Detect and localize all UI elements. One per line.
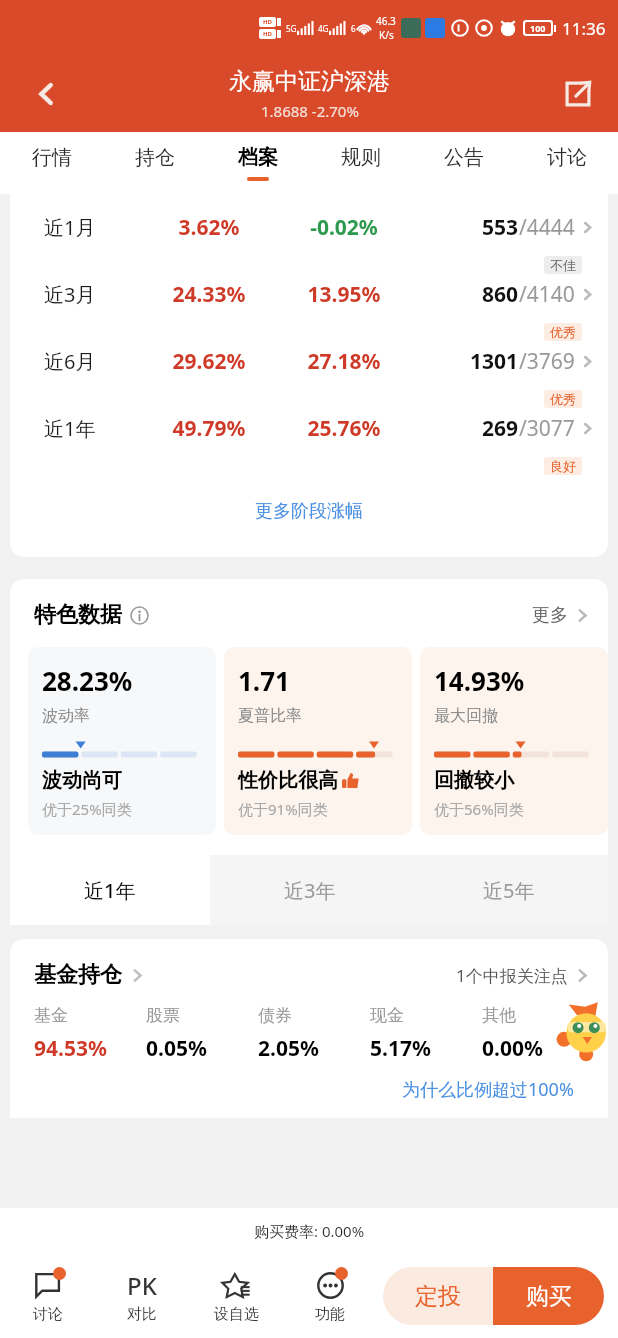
button[interactable]: 更多 <box>532 604 590 627</box>
staticText: 4G <box>318 23 329 34</box>
staticText: 夏普比率 <box>238 706 302 726</box>
button[interactable]: 近1月 <box>10 194 608 261</box>
staticText: 近3年 <box>284 877 336 904</box>
staticText: 功能 <box>315 1305 345 1324</box>
button[interactable]: 讨论 <box>515 132 618 194</box>
staticText: /4444 <box>519 213 575 242</box>
staticText: 对比 <box>127 1305 157 1324</box>
staticText: 设自选 <box>214 1305 259 1324</box>
staticText: 14.93% <box>434 663 525 698</box>
staticText: /4140 <box>519 280 575 309</box>
staticText: 其他 <box>482 1005 516 1026</box>
staticText: 回撤较小 <box>434 768 514 793</box>
staticText: PK <box>127 1269 157 1301</box>
staticText: HD <box>263 30 272 38</box>
button[interactable]: 1个中报关注点 <box>456 964 590 987</box>
button[interactable]: 近1年 <box>10 855 210 925</box>
staticText: 100 <box>530 22 546 34</box>
staticText: 0.00% <box>482 1034 543 1063</box>
staticText: 近3月 <box>44 281 144 308</box>
staticText: 讨论 <box>33 1305 63 1324</box>
staticText: 优于56%同类 <box>434 799 524 819</box>
staticText: 1个中报关注点 <box>456 964 568 987</box>
staticText: 波动尚可 <box>42 768 122 793</box>
staticText: 优于91%同类 <box>238 799 328 819</box>
staticText: 27.18% <box>274 347 414 376</box>
staticText: 269 <box>482 414 519 443</box>
staticText: -0.02% <box>274 213 414 242</box>
staticText: 1.8688 -2.70% <box>261 101 359 121</box>
staticText: 优秀 <box>550 391 576 407</box>
button[interactable]: 基金持仓 <box>34 961 145 989</box>
staticText: 49.79% <box>144 414 274 443</box>
staticText: 24.33% <box>144 280 274 309</box>
button[interactable]: 1.71 <box>224 647 412 835</box>
button[interactable]: 功能 <box>283 1254 377 1338</box>
staticText: 1.71 <box>238 663 290 698</box>
staticText: 5.17% <box>370 1034 431 1063</box>
button[interactable]: 14.93% <box>420 647 608 835</box>
staticText: 行情 <box>32 145 72 170</box>
staticText: 更多 <box>532 604 568 627</box>
staticText: 最大回撤 <box>434 706 498 726</box>
staticText: 近1年 <box>84 877 136 904</box>
staticText: HD <box>263 18 272 26</box>
button[interactable]: 购买 <box>493 1267 604 1325</box>
staticText: 档案 <box>238 145 278 170</box>
staticText: 股票 <box>146 1005 180 1026</box>
button[interactable]: 公告 <box>412 132 515 194</box>
staticText: 1301 <box>470 347 519 376</box>
staticText: /3077 <box>519 414 575 443</box>
staticText: 优于25%同类 <box>42 799 132 819</box>
staticText: 29.62% <box>144 347 274 376</box>
button[interactable]: 档案 <box>206 132 309 194</box>
button[interactable]: Share <box>556 72 600 116</box>
staticText: 公告 <box>444 145 484 170</box>
staticText: 近1月 <box>44 214 144 241</box>
staticText: 特色数据 <box>34 601 122 629</box>
button[interactable]: 设自选 <box>189 1254 283 1338</box>
button[interactable]: 为什么比例超过100% <box>10 1077 574 1102</box>
staticText: 近1年 <box>44 415 144 442</box>
staticText: 波动率 <box>42 706 90 726</box>
staticText: 讨论 <box>547 145 587 170</box>
staticText: 更多阶段涨幅 <box>255 500 363 523</box>
button[interactable]: 行情 <box>0 132 103 194</box>
button[interactable]: 规则 <box>309 132 412 194</box>
staticText: K/s <box>379 28 394 42</box>
button[interactable]: 近3月 <box>10 261 608 328</box>
staticText: 为什么比例超过100% <box>402 1077 574 1102</box>
staticText: 553 <box>482 213 519 242</box>
staticText: 定投 <box>415 1282 461 1311</box>
staticText: 债券 <box>258 1005 292 1026</box>
staticText: 860 <box>482 280 519 309</box>
button[interactable]: PK <box>95 1254 189 1338</box>
button[interactable]: 近3年 <box>210 855 409 925</box>
button[interactable]: 持仓 <box>103 132 206 194</box>
button[interactable]: Back <box>24 72 68 116</box>
staticText: 现金 <box>370 1005 404 1026</box>
staticText: 46.3 <box>376 14 396 28</box>
staticText: 优秀 <box>550 324 576 340</box>
button[interactable]: 更多阶段涨幅 <box>10 500 608 523</box>
staticText: 良好 <box>550 458 576 474</box>
staticText: 28.23% <box>42 663 133 698</box>
staticText: 基金持仓 <box>34 961 122 989</box>
button[interactable]: 近1年 <box>10 395 608 462</box>
staticText: 13.95% <box>274 280 414 309</box>
staticText: /3769 <box>519 347 575 376</box>
staticText: 不佳 <box>550 257 576 273</box>
staticText: 2.05% <box>258 1034 319 1063</box>
staticText: 11:36 <box>562 17 606 40</box>
button[interactable]: 28.23% <box>28 647 216 835</box>
staticText: 永赢中证沪深港 <box>229 67 390 96</box>
button[interactable]: 近5年 <box>409 855 608 925</box>
staticText: 购买费率: 0.00% <box>254 1221 365 1241</box>
staticText: 近5年 <box>483 877 535 904</box>
button[interactable]: 讨论 <box>0 1254 95 1338</box>
staticText: 基金 <box>34 1005 68 1026</box>
button[interactable]: 定投 <box>383 1267 493 1325</box>
button[interactable]: 近6月 <box>10 328 608 395</box>
staticText: 持仓 <box>135 145 175 170</box>
staticText: 规则 <box>341 145 381 170</box>
